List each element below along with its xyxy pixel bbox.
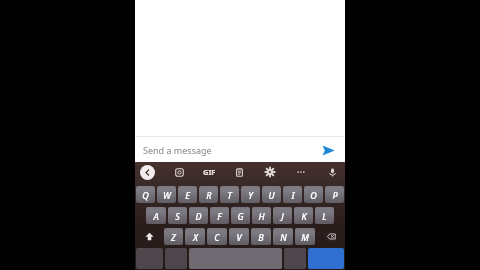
staticText: GIF: [203, 167, 216, 177]
button[interactable]: Emoji: [165, 248, 187, 269]
staticText: I: [291, 189, 295, 201]
staticText: R: [206, 189, 212, 201]
staticText: V: [236, 231, 242, 243]
button[interactable]: K: [294, 207, 313, 224]
staticText: F: [217, 210, 222, 222]
button[interactable]: F: [210, 207, 229, 224]
staticText: U: [268, 189, 275, 201]
button[interactable]: W: [157, 186, 176, 203]
staticText: S: [175, 210, 180, 222]
button[interactable]: V: [229, 228, 249, 245]
staticText: B: [258, 231, 264, 243]
button[interactable]: G: [231, 207, 250, 224]
button[interactable]: Send a message: [143, 137, 318, 162]
button[interactable]: D: [189, 207, 208, 224]
button[interactable]: H: [252, 207, 271, 224]
staticText: Q: [142, 189, 149, 201]
button[interactable]: I: [283, 186, 302, 203]
button[interactable]: A: [146, 207, 166, 224]
button[interactable]: C: [207, 228, 227, 245]
staticText: Y: [248, 189, 253, 201]
staticText: A: [153, 210, 159, 222]
staticText: E: [185, 189, 190, 201]
button[interactable]: M: [295, 228, 315, 245]
button[interactable]: R: [199, 186, 218, 203]
staticText: P: [332, 189, 338, 201]
staticText: Send a message: [143, 144, 212, 156]
button[interactable]: E: [178, 186, 197, 203]
staticText: L: [322, 210, 327, 222]
staticText: O: [310, 189, 317, 201]
staticText: G: [237, 210, 244, 222]
button[interactable]: O: [304, 186, 323, 203]
button[interactable]: P: [325, 186, 344, 203]
button[interactable]: Backspace: [317, 228, 344, 245]
button[interactable]: Q: [136, 186, 155, 203]
staticText: H: [258, 210, 265, 222]
button[interactable]: Enter: [308, 248, 344, 269]
staticText: D: [195, 210, 202, 222]
button[interactable]: U: [262, 186, 281, 203]
staticText: M: [301, 231, 309, 243]
staticText: W: [163, 189, 171, 201]
button[interactable]: Voice input: [324, 164, 340, 180]
button[interactable]: Shift: [136, 228, 162, 245]
staticText: T: [227, 189, 232, 201]
button[interactable]: Y: [241, 186, 260, 203]
staticText: Z: [171, 231, 176, 243]
button[interactable]: N: [273, 228, 293, 245]
button[interactable]: J: [273, 207, 292, 224]
button[interactable]: Back: [140, 165, 155, 180]
button[interactable]: Settings: [262, 164, 278, 180]
staticText: X: [193, 231, 198, 243]
button[interactable]: Stickers: [171, 164, 187, 180]
button[interactable]: Clipboard: [231, 164, 247, 180]
button[interactable]: B: [251, 228, 271, 245]
staticText: N: [280, 231, 287, 243]
button[interactable]: S: [168, 207, 187, 224]
button[interactable]: T: [220, 186, 239, 203]
button[interactable]: GIF: [203, 164, 216, 180]
staticText: J: [281, 210, 284, 222]
button[interactable]: Z: [164, 228, 183, 245]
button[interactable]: X: [185, 228, 205, 245]
button[interactable]: L: [315, 207, 334, 224]
button[interactable]: Period: [284, 248, 306, 269]
staticText: C: [214, 231, 220, 243]
button[interactable]: More options: [293, 164, 309, 180]
staticText: K: [301, 210, 307, 222]
button[interactable]: Send: [318, 140, 338, 160]
